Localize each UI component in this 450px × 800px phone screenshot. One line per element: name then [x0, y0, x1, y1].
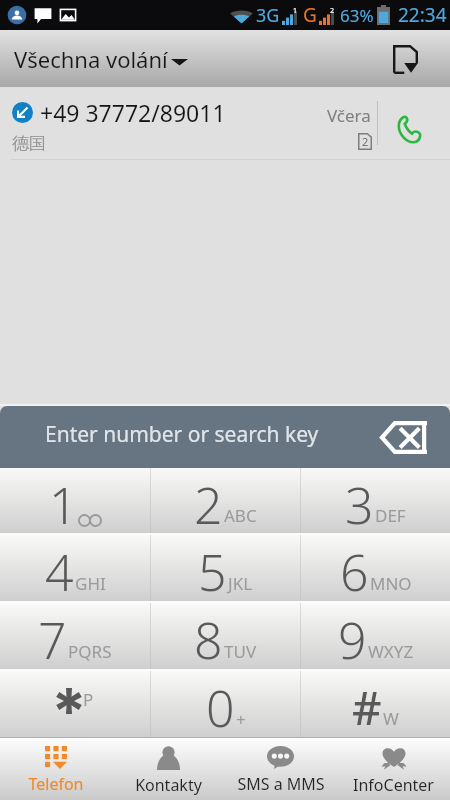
button[interactable]: 7 — [0, 603, 150, 669]
button[interactable]: InfoCenter — [337, 738, 450, 800]
staticText: 7 — [38, 606, 67, 672]
button[interactable]: 6 — [301, 535, 450, 601]
staticText: Telefon — [28, 773, 84, 795]
staticText: Kontakty — [135, 774, 202, 796]
staticText: ABC — [224, 504, 257, 527]
staticText: DEF — [375, 504, 406, 527]
staticText: TUV — [224, 640, 257, 663]
button[interactable]: Delete call log — [383, 37, 427, 81]
staticText: SMS a MMS — [237, 773, 325, 795]
button[interactable]: +49 37772/89011 — [0, 87, 326, 159]
staticText: 6 — [340, 538, 369, 604]
staticText: 3G — [256, 3, 280, 28]
button[interactable]: SMS a MMS — [224, 738, 337, 800]
staticText: 1 — [293, 6, 298, 16]
staticText: Všechna volání — [14, 44, 168, 74]
staticText: G — [303, 2, 317, 28]
staticText: 1 — [49, 471, 78, 536]
staticText: JKL — [228, 572, 253, 595]
button[interactable]: 4 — [0, 535, 150, 601]
staticText: Včera — [327, 104, 371, 127]
staticText: Enter number or search key — [45, 420, 319, 449]
staticText: 2 — [194, 471, 223, 536]
staticText: 22:34 — [398, 2, 447, 28]
staticText: W — [383, 707, 399, 730]
staticText: 5 — [198, 538, 227, 604]
staticText: 0 — [206, 674, 235, 740]
staticText: + — [236, 708, 246, 731]
button[interactable]: 0 — [151, 671, 300, 737]
button[interactable]: P — [0, 671, 150, 737]
button[interactable]: 8 — [151, 603, 300, 669]
staticText: 9 — [338, 606, 367, 672]
staticText: +49 37772/89011 — [40, 97, 226, 128]
staticText: # — [352, 676, 382, 739]
button[interactable]: Call — [378, 87, 450, 159]
button[interactable]: 5 — [151, 535, 300, 601]
button[interactable]: 2 — [151, 468, 300, 533]
button[interactable]: 3 — [301, 468, 450, 533]
staticText: 德国 — [12, 133, 46, 154]
button[interactable]: # — [301, 671, 450, 737]
button[interactable]: Všechna volání — [0, 44, 202, 74]
staticText: InfoCenter — [353, 774, 434, 796]
button[interactable]: Kontakty — [112, 738, 224, 800]
staticText: PQRS — [68, 640, 112, 663]
staticText: P — [83, 688, 94, 711]
button[interactable]: Telefon — [0, 738, 112, 800]
button[interactable]: 1 — [0, 468, 150, 533]
button[interactable]: Backspace — [377, 414, 429, 460]
staticText: 2 — [362, 134, 369, 149]
button[interactable]: Enter number or search key — [0, 406, 450, 468]
staticText: 4 — [45, 538, 74, 604]
staticText: WXYZ — [368, 640, 414, 663]
button[interactable]: 9 — [301, 603, 450, 669]
staticText: GHI — [75, 572, 106, 595]
staticText: MNO — [370, 572, 412, 595]
staticText: 2 — [330, 6, 335, 16]
staticText: 8 — [194, 606, 223, 672]
staticText: 63% — [340, 4, 374, 27]
staticText: 3 — [345, 471, 374, 536]
